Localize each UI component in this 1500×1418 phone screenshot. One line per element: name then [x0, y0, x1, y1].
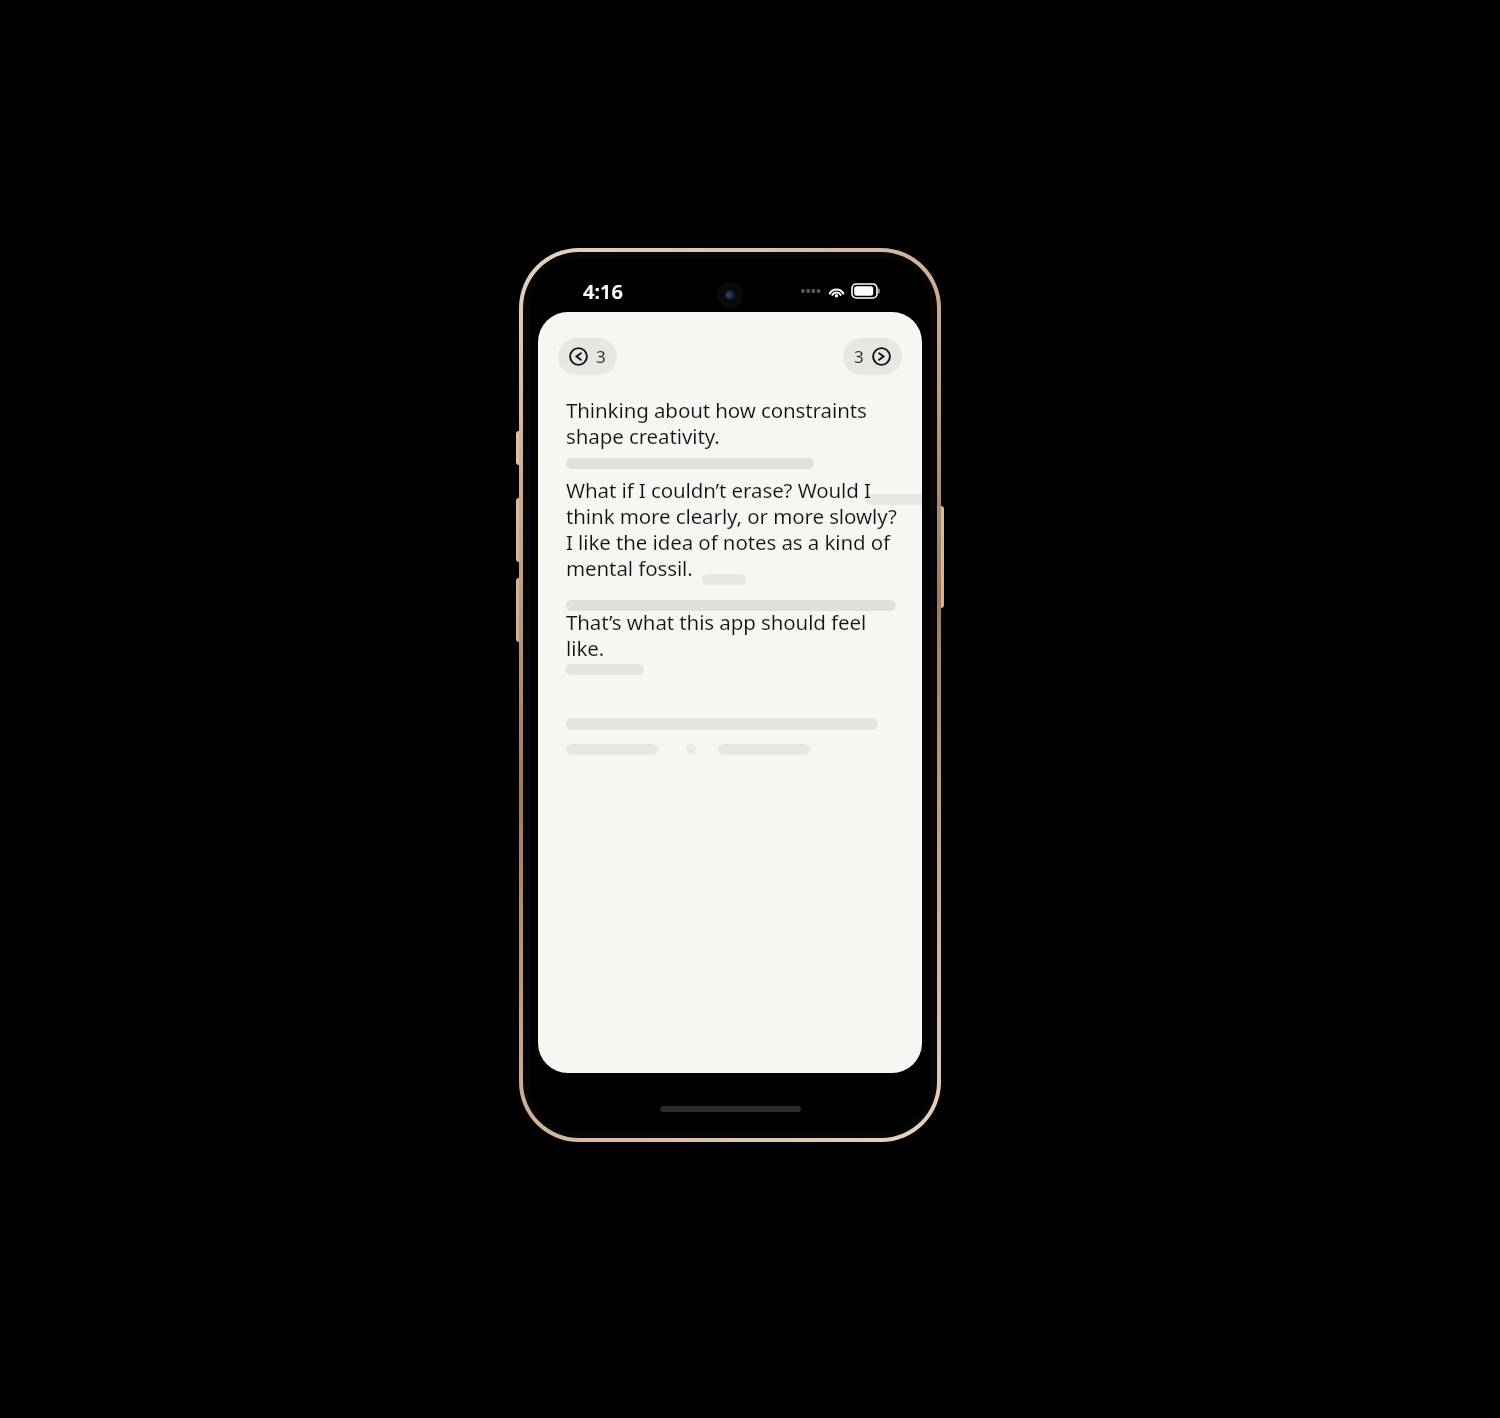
- staticText: 3: [596, 345, 606, 368]
- staticText: That’s what this app should feel like.: [566, 608, 902, 662]
- button[interactable]: Next note: [843, 338, 902, 375]
- button[interactable]: Previous note: [558, 338, 617, 375]
- staticText: What if I couldn’t erase? Would I think …: [566, 476, 897, 582]
- staticText: 4:16: [583, 278, 623, 305]
- staticText: 3: [854, 345, 864, 368]
- staticText: Thinking about how constraints shape cre…: [566, 396, 867, 450]
